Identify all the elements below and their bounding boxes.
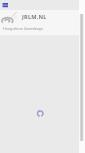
button[interactable]: Logo: [2, 2, 9, 8]
staticText: Fotografie en Gamedesign: [3, 27, 43, 31]
staticText: JRLM.NL: [22, 13, 47, 21]
